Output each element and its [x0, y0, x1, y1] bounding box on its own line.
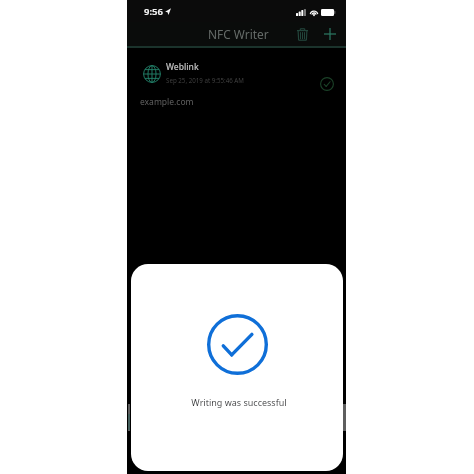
staticText: Writing was successful [191, 396, 287, 408]
staticText: Sep 25, 2019 at 9:55:46 AM [166, 76, 244, 84]
button[interactable]: Weblink [127, 48, 346, 110]
staticText: Weblink [166, 61, 199, 73]
staticText: NFC Writer [208, 26, 269, 42]
staticText: 9:56 [144, 5, 163, 18]
staticText: example.com [140, 96, 194, 108]
button[interactable]: Delete [292, 24, 312, 44]
button[interactable]: Written [317, 74, 337, 94]
button[interactable]: Add [320, 24, 340, 44]
